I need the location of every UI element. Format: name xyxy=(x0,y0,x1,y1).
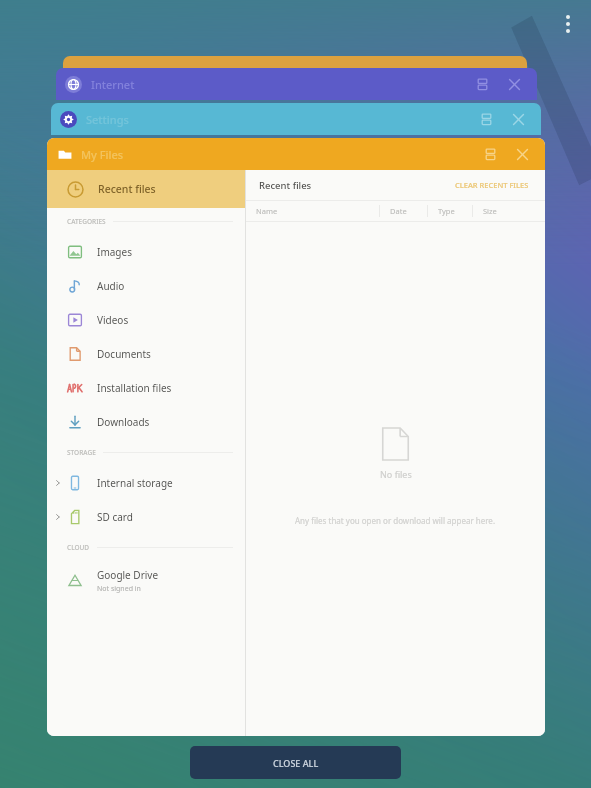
staticText: Audio xyxy=(97,279,125,293)
staticText: Not signed in xyxy=(97,584,141,594)
staticText: Date xyxy=(390,206,407,216)
button[interactable]: Close xyxy=(507,139,537,169)
button[interactable]: Videos xyxy=(47,303,245,337)
button[interactable]: Close xyxy=(499,69,529,99)
button[interactable] xyxy=(63,56,527,82)
staticText: SD card xyxy=(97,510,133,524)
staticText: Installation files xyxy=(97,381,172,395)
staticText: CLEAR RECENT FILES xyxy=(455,180,529,190)
button[interactable]: Internal storage xyxy=(47,466,245,500)
staticText: Internal storage xyxy=(97,476,173,490)
button[interactable]: CLEAR RECENT FILES xyxy=(451,180,533,190)
staticText: Internet xyxy=(91,77,135,92)
button[interactable]: More options xyxy=(552,8,584,40)
button[interactable]: Split screen xyxy=(467,69,497,99)
button[interactable]: Split screen xyxy=(471,104,501,134)
staticText: Settings xyxy=(86,112,129,127)
button[interactable]: Settings xyxy=(51,103,541,135)
button[interactable]: Google Drive xyxy=(47,561,245,601)
staticText: STORAGE xyxy=(67,448,96,457)
staticText: Type xyxy=(438,206,455,216)
button[interactable]: Documents xyxy=(47,337,245,371)
staticText: Downloads xyxy=(97,415,150,429)
staticText: CATEGORIES xyxy=(67,217,106,226)
button[interactable]: SD card xyxy=(47,500,245,534)
staticText: CLOSE ALL xyxy=(273,757,319,769)
staticText: Documents xyxy=(97,347,151,361)
staticText: My Files xyxy=(81,147,124,162)
staticText: Recent files xyxy=(98,182,156,196)
staticText: Size xyxy=(483,206,497,216)
staticText: Recent files xyxy=(259,179,312,192)
staticText: Google Drive xyxy=(97,568,159,582)
button[interactable]: CLOSE ALL xyxy=(190,746,401,779)
button[interactable]: Images xyxy=(47,235,245,269)
staticText: Any files that you open or download will… xyxy=(295,515,496,526)
button[interactable]: My Files xyxy=(47,138,545,170)
button[interactable]: Downloads xyxy=(47,405,245,439)
staticText: Name xyxy=(256,206,278,216)
staticText: Videos xyxy=(97,313,129,327)
staticText: CLOUD xyxy=(67,543,90,552)
button[interactable]: Audio xyxy=(47,269,245,303)
staticText: No files xyxy=(380,468,412,480)
button[interactable]: Close xyxy=(503,104,533,134)
staticText: Images xyxy=(97,245,132,259)
button[interactable]: Installation files xyxy=(47,371,245,405)
button[interactable]: Split screen xyxy=(475,139,505,169)
button[interactable]: Recent files xyxy=(47,170,245,208)
button[interactable]: Internet xyxy=(56,68,537,100)
